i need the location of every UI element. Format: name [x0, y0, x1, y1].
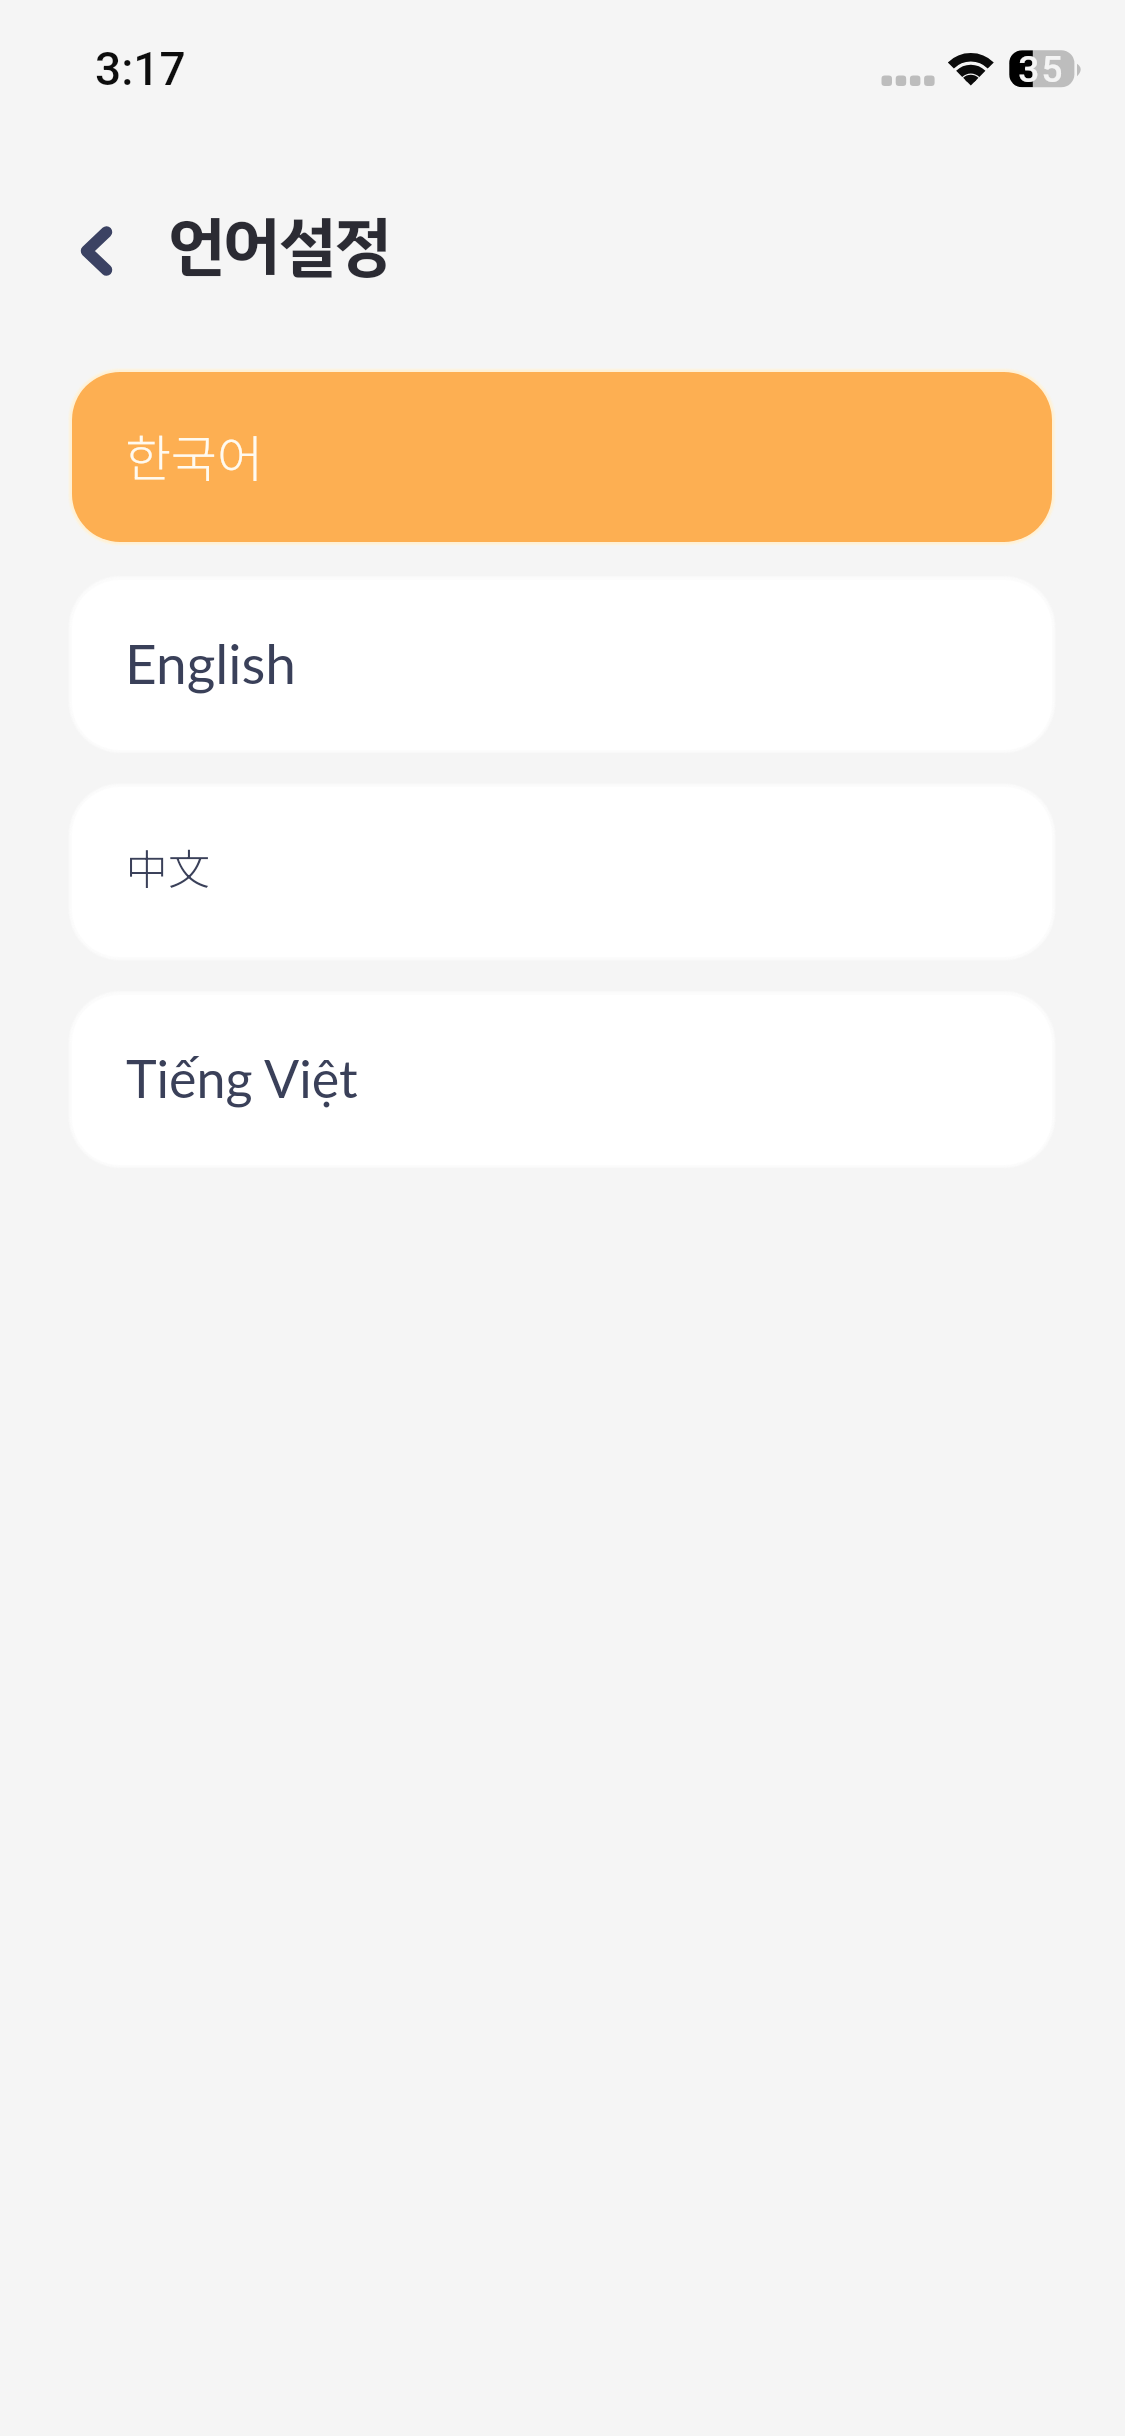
staticText: 한국어 [125, 419, 263, 491]
button[interactable]: Tiếng Việt [72, 995, 1052, 1165]
button[interactable]: English [72, 580, 1052, 750]
button[interactable]: Back [58, 214, 136, 288]
staticText: 35 [1018, 48, 1065, 85]
button[interactable]: 中文 [72, 787, 1052, 957]
staticText: 언어설정 [168, 199, 390, 289]
button[interactable]: 한국어 [72, 372, 1052, 542]
staticText: English [125, 630, 296, 696]
staticText: 3:17 [95, 42, 186, 90]
staticText: 中文 [126, 836, 211, 897]
staticText: Tiếng Việt [126, 1047, 358, 1109]
